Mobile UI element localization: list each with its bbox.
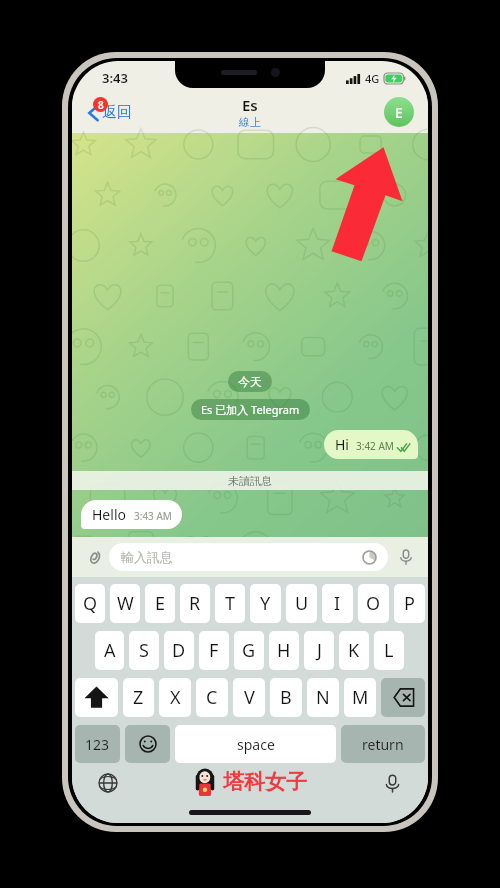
button[interactable]: V [233,678,265,717]
button[interactable]: S [129,631,159,670]
staticText: 輸入訊息 [121,549,173,565]
button[interactable]: Y [250,584,281,623]
button[interactable]: A [95,631,124,670]
button[interactable]: Hi [324,430,418,459]
button[interactable]: Voice message [393,544,419,570]
button[interactable]: H [269,631,299,670]
button[interactable]: Dictation [380,771,404,795]
staticText: U [295,591,309,616]
staticText: Hello [92,505,126,524]
button[interactable]: 輸入訊息 [109,543,388,571]
button[interactable]: L [374,631,404,670]
button[interactable]: J [304,631,334,670]
staticText: I [334,591,341,616]
staticText: Es 已加入 Telegram [201,402,300,417]
button[interactable]: 返回 [82,99,138,126]
button[interactable]: Change keyboard language [96,771,120,795]
staticText: A [104,638,116,663]
button[interactable]: O [358,584,389,623]
button[interactable]: N [307,678,339,717]
button[interactable]: F [199,631,229,670]
button[interactable]: K [339,631,369,670]
staticText: G [242,638,256,663]
staticText: L [384,638,394,663]
button[interactable]: U [286,584,317,623]
button[interactable]: I [322,584,353,623]
staticText: 線上 [239,115,261,129]
button[interactable]: Hello [81,500,182,529]
staticText: return [362,735,404,754]
button[interactable]: Profile avatar [384,97,414,127]
staticText: X [170,685,181,710]
staticText: Es [242,95,258,115]
staticText: R [189,591,201,616]
button[interactable]: Z [123,678,154,717]
button[interactable]: C [196,678,228,717]
button[interactable]: T [215,584,245,623]
button[interactable]: space [175,725,336,763]
staticText: F [209,638,219,663]
staticText: 3:43 AM [134,509,172,523]
staticText: O [366,591,381,616]
staticText: H [277,638,291,663]
staticText: Z [133,685,144,710]
button[interactable]: G [234,631,264,670]
staticText: 3:42 AM [356,439,394,453]
staticText: T [225,591,236,616]
button[interactable]: Emoji [125,725,170,763]
staticText: D [172,638,186,663]
button[interactable]: X [159,678,191,717]
staticText: 返回 [102,103,132,122]
button[interactable]: Q [75,584,105,623]
staticText: 今天 [238,374,262,389]
staticText: E [395,103,403,122]
staticText: 4G [365,71,380,86]
staticText: J [317,638,322,663]
button[interactable]: M [344,678,376,717]
button[interactable]: Attach [81,544,107,570]
button[interactable]: Shift [75,678,118,717]
staticText: N [316,685,330,710]
button[interactable]: R [180,584,210,623]
staticText: 未讀訊息 [228,474,272,488]
staticText: 8 [98,98,104,112]
staticText: space [237,735,275,754]
staticText: S [139,638,149,663]
staticText: W [117,591,134,616]
staticText: Y [260,591,271,616]
staticText: Hi [335,435,349,454]
button[interactable]: P [394,584,425,623]
button[interactable]: 123 [75,725,120,763]
button[interactable]: Backspace [381,678,425,717]
button[interactable]: W [110,584,140,623]
button[interactable]: Stickers [359,547,379,567]
button[interactable]: return [341,725,425,763]
staticText: 3:43 [102,69,128,87]
staticText: Q [83,591,98,616]
button[interactable]: B [270,678,302,717]
staticText: V [244,685,255,710]
staticText: E [155,591,166,616]
staticText: B [280,685,292,710]
staticText: M [352,685,369,710]
staticText: C [206,685,218,710]
staticText: 塔科女子 [223,769,307,795]
button[interactable]: E [145,584,175,623]
staticText: P [404,591,415,616]
button[interactable]: D [164,631,194,670]
staticText: K [348,638,360,663]
staticText: 123 [85,735,110,754]
